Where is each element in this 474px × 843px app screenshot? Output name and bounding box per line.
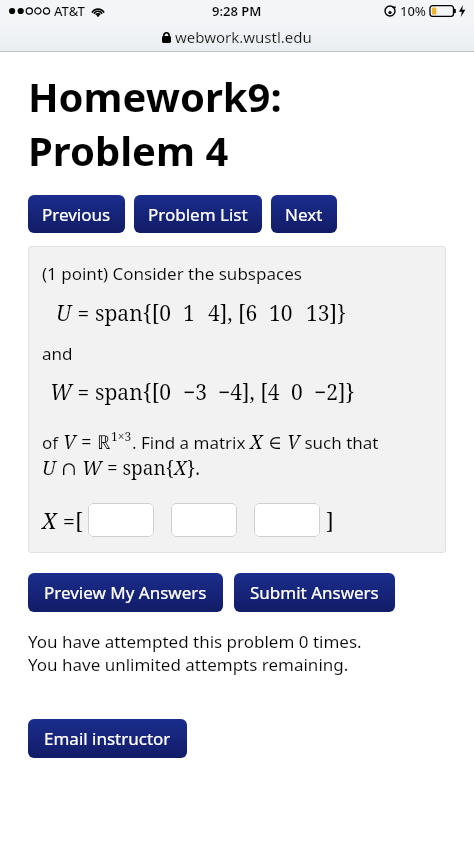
staticText: W	[50, 378, 72, 407]
staticText: 10%	[400, 2, 426, 20]
staticText: 9:28 PM	[212, 2, 262, 20]
staticText: (1 point) Consider the subspaces	[42, 262, 302, 285]
staticText: Preview My Answers	[44, 581, 207, 604]
staticText: span{[0	[95, 299, 172, 328]
staticText: 10	[269, 299, 293, 328]
staticText: Email instructor	[44, 727, 171, 750]
staticText: }.	[187, 455, 200, 481]
staticText: U	[56, 299, 72, 328]
staticText: W	[82, 455, 102, 481]
button[interactable]: Next	[271, 195, 337, 233]
staticText: V	[63, 429, 76, 455]
staticText: webwork.wustl.edu	[175, 27, 312, 47]
button[interactable]: Answer entry field	[171, 503, 237, 537]
staticText: 1	[183, 299, 195, 328]
staticText: Next	[285, 203, 323, 226]
staticText: . Find a matrix	[132, 431, 250, 454]
staticText: ]	[326, 505, 334, 535]
staticText: X	[174, 455, 187, 481]
staticText: of	[42, 431, 63, 454]
staticText: = span{	[102, 455, 174, 481]
staticText: 4], [6	[208, 299, 258, 328]
staticText: =	[72, 378, 95, 407]
button[interactable]: Previous	[28, 195, 125, 233]
staticText: span{[0	[95, 378, 172, 407]
staticText: You have attempted this problem 0 times.	[28, 630, 362, 653]
staticText: −4], [4	[218, 378, 280, 407]
staticText: ∩	[56, 455, 82, 481]
button[interactable]: Preview My Answers	[28, 573, 223, 612]
staticText: and	[42, 342, 73, 365]
staticText: Submit Answers	[250, 581, 379, 604]
staticText: Previous	[42, 203, 111, 226]
staticText: Problem List	[148, 203, 248, 226]
staticText: such that	[300, 431, 379, 454]
staticText: Homework9:	[28, 69, 282, 123]
staticText: X	[42, 505, 57, 535]
staticText: 13]}	[306, 299, 347, 328]
staticText: =	[72, 299, 95, 328]
button[interactable]: Answer entry field	[88, 503, 154, 537]
staticText: U	[42, 455, 56, 481]
button[interactable]: Email instructor	[28, 719, 187, 758]
staticText: You have unlimited attempts remaining.	[28, 653, 349, 676]
staticText: Problem 4	[28, 123, 229, 177]
staticText: 1×3	[111, 428, 132, 444]
button[interactable]: Submit Answers	[234, 573, 395, 612]
staticText: V	[287, 429, 300, 455]
button[interactable]: Answer entry field	[254, 503, 320, 537]
staticText: −3	[183, 378, 207, 407]
staticText: =[	[57, 505, 83, 535]
staticText: X	[250, 429, 263, 455]
staticText: 0	[291, 378, 303, 407]
button[interactable]: Problem List	[134, 195, 262, 233]
staticText: ℝ	[97, 429, 111, 455]
staticText: −2]}	[314, 378, 355, 407]
staticText: ∈	[263, 429, 287, 455]
staticText: AT&T	[54, 2, 85, 20]
staticText: =	[76, 429, 97, 455]
